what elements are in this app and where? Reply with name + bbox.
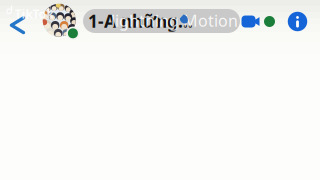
button[interactable]: Group profile [43,4,81,42]
button[interactable]: Back [9,16,37,46]
button[interactable]: Conversation info [287,7,311,35]
button[interactable]: 1-A những… [83,9,240,33]
staticText: lightning Motion [111,10,238,31]
staticText: 1-A những… [88,9,193,32]
staticText: TikTok [14,6,53,22]
button[interactable]: Video call [241,7,267,35]
